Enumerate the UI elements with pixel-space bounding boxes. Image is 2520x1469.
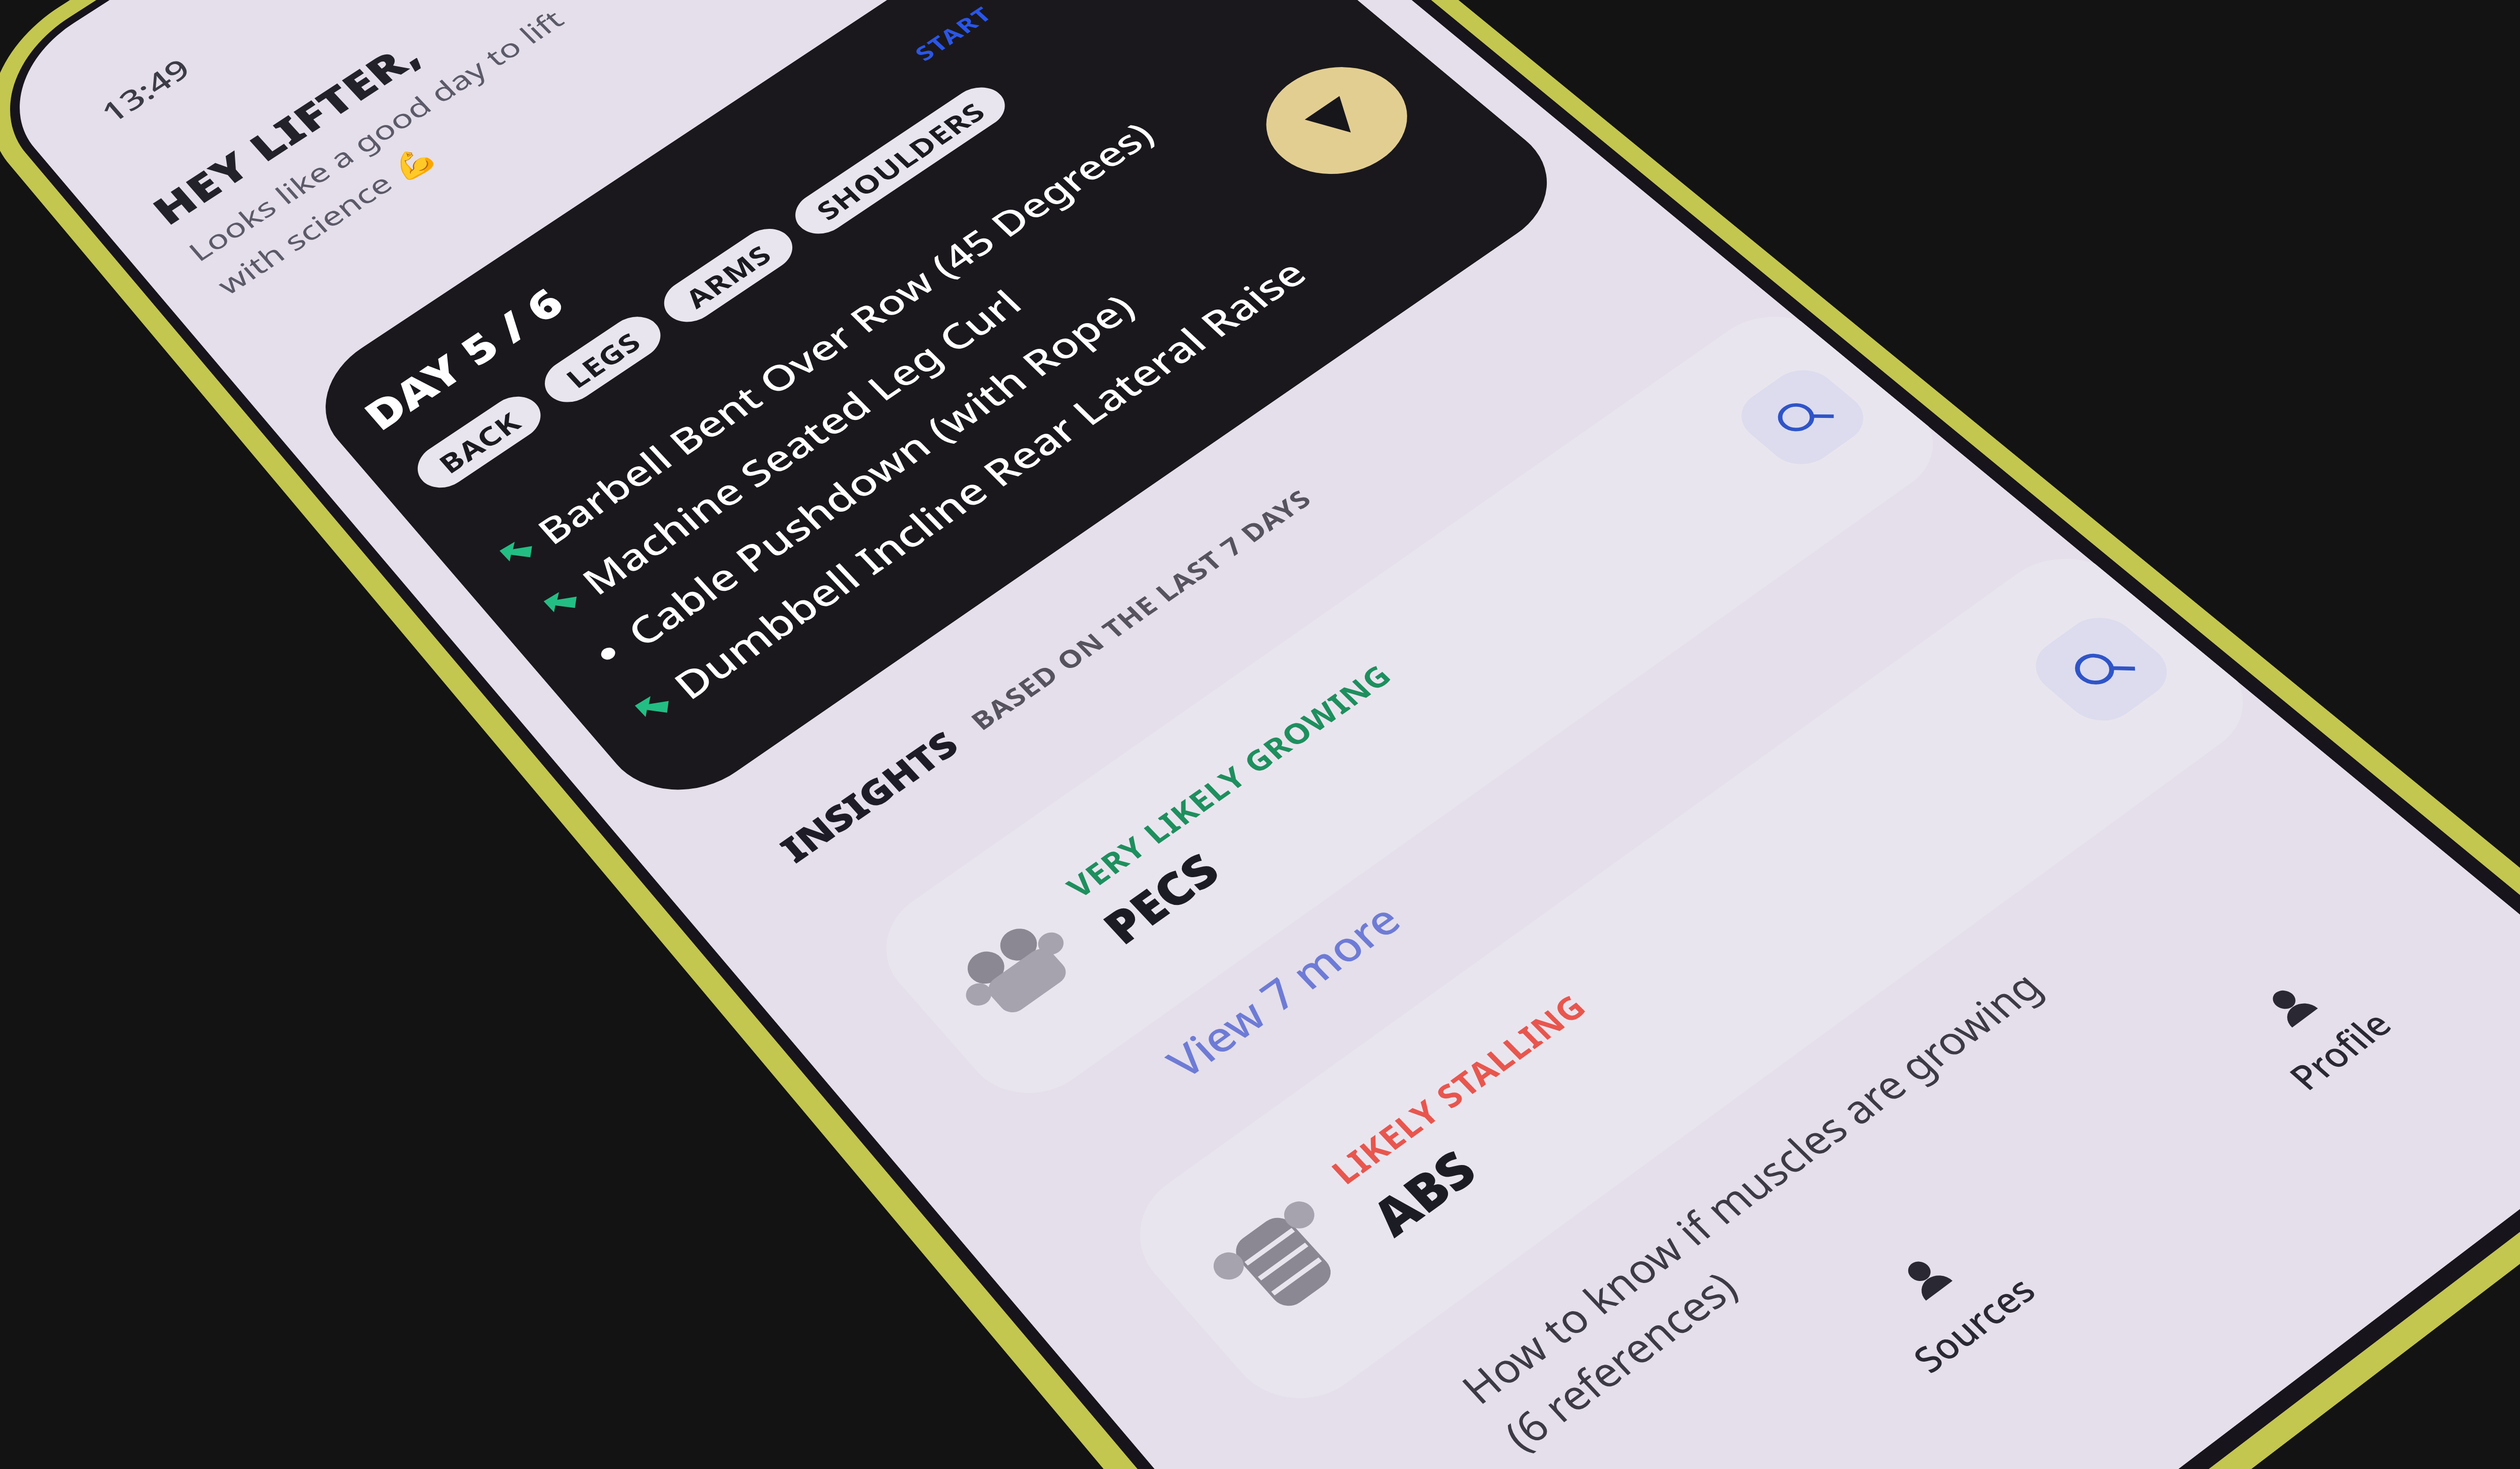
- staticText: ARMS: [659, 216, 797, 335]
- staticText: Dumbbell Incline Rear Lateral Raise: [555, 121, 1430, 835]
- button[interactable]: VERY LIKELY GROWING: [663, 66, 2175, 1332]
- staticText: Sources: [1872, 1234, 2077, 1411]
- staticText: SHOULDERS: [779, 59, 1022, 261]
- button[interactable]: ARMS: [629, 191, 827, 360]
- staticText: Barbell Bent Over Row (45 Degrees): [426, 0, 1268, 675]
- button[interactable]: Search: [1991, 569, 2213, 769]
- staticText: BACK: [412, 385, 546, 500]
- staticText: View 7 more: [1106, 841, 1460, 1138]
- button[interactable]: Search: [1701, 326, 1905, 508]
- staticText: PECS: [1062, 812, 1259, 985]
- button[interactable]: LIKELY STALLING: [895, 288, 2517, 1469]
- staticText: LIKELY STALLING: [1270, 931, 1647, 1245]
- staticText: BASED ON THE LAST 7 DAYS: [903, 414, 1379, 804]
- button[interactable]: Profile: [1967, 722, 2520, 1332]
- staticText: Machine Seated Leg Curl: [495, 191, 1107, 693]
- staticText: INSIGHTS: [733, 681, 1005, 911]
- button[interactable]: Sources: [1602, 995, 2308, 1469]
- staticText: VERY LIKELY GROWING: [998, 588, 1462, 971]
- button[interactable]: SHOULDERS: [749, 35, 1051, 286]
- staticText: DAY 5 / 6: [312, 232, 615, 486]
- button[interactable]: Home: [1207, 1274, 1930, 1469]
- staticText: ABS: [1330, 1109, 1517, 1276]
- staticText: Cable Pushdown (with Rope): [529, 182, 1233, 757]
- button[interactable]: LEGS: [510, 281, 695, 438]
- staticText: Profile: [2250, 970, 2431, 1127]
- staticText: Looks like a good day to lift with scien…: [111, 0, 668, 384]
- staticText: START: [893, 0, 1014, 84]
- button[interactable]: View 7 more: [1088, 824, 1479, 1156]
- button[interactable]: Start workout: [1206, 2, 1470, 238]
- button[interactable]: DAY 5 / 6: [40, 0, 1818, 1085]
- staticText: How to know if muscles are growing (6 re…: [1326, 825, 2238, 1469]
- staticText: HEY LIFTER,: [93, 0, 478, 292]
- staticText: LEGS: [541, 306, 664, 413]
- button[interactable]: BACK: [381, 359, 577, 525]
- staticText: 13:49: [72, 27, 218, 152]
